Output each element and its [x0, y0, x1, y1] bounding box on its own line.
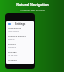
staticText: Standard	[8, 46, 17, 49]
staticText: Appearance	[8, 27, 22, 30]
other: Back	[8, 23, 11, 25]
button[interactable]: Appearance	[6, 26, 34, 34]
staticText: Storage	[8, 51, 17, 54]
button[interactable]: Settings	[6, 21, 34, 26]
staticText: Sound & haptics	[8, 35, 26, 38]
button[interactable]: Sound & haptics	[6, 34, 34, 42]
staticText: Settings	[15, 22, 26, 25]
staticText: Privacy	[8, 43, 16, 46]
staticText: Account	[8, 59, 17, 62]
staticText: Light theme	[8, 30, 19, 33]
button[interactable]: Privacy	[6, 42, 34, 50]
staticText: A calmer way to move	[20, 8, 45, 11]
button[interactable]: Storage	[6, 50, 34, 58]
staticText: 12 GB free	[8, 54, 18, 57]
button[interactable]: Account	[6, 58, 34, 64]
staticText: Natural Navigation	[16, 2, 49, 7]
staticText: Default	[8, 38, 15, 41]
